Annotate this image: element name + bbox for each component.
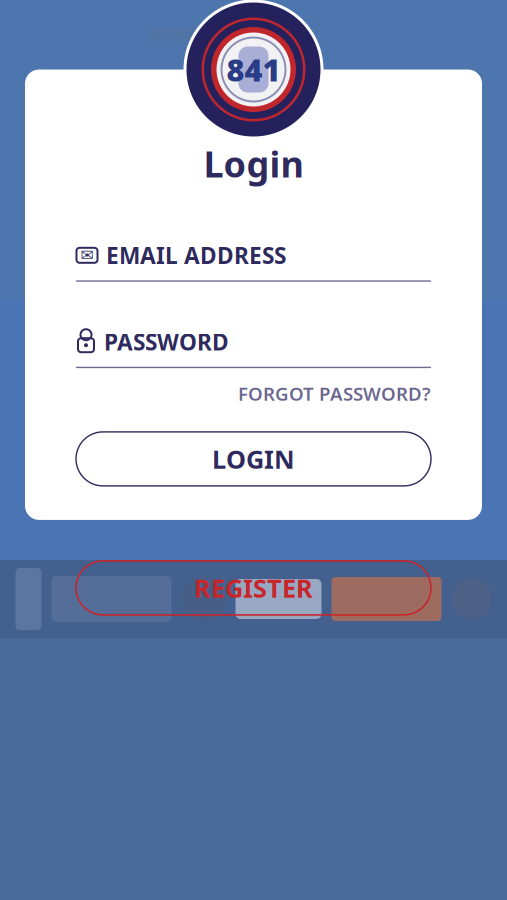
button[interactable]: PASSWORD bbox=[76, 327, 431, 368]
button[interactable]: REGISTER bbox=[76, 561, 431, 615]
staticText: PASSWORD bbox=[104, 327, 229, 357]
button[interactable]: FORGOT PASSWORD? bbox=[238, 381, 431, 406]
staticText: REGISTER bbox=[194, 571, 313, 605]
staticText: FORGOT PASSWORD? bbox=[238, 381, 431, 406]
staticText: Login bbox=[203, 139, 303, 187]
staticText: LOGIN bbox=[212, 442, 295, 476]
button[interactable]: ✉ bbox=[76, 240, 431, 282]
button[interactable]: LOGIN bbox=[76, 432, 431, 486]
staticText: EMAIL ADDRESS bbox=[106, 240, 286, 270]
staticText: ✉ bbox=[80, 246, 93, 264]
staticText: 841 bbox=[226, 49, 280, 90]
